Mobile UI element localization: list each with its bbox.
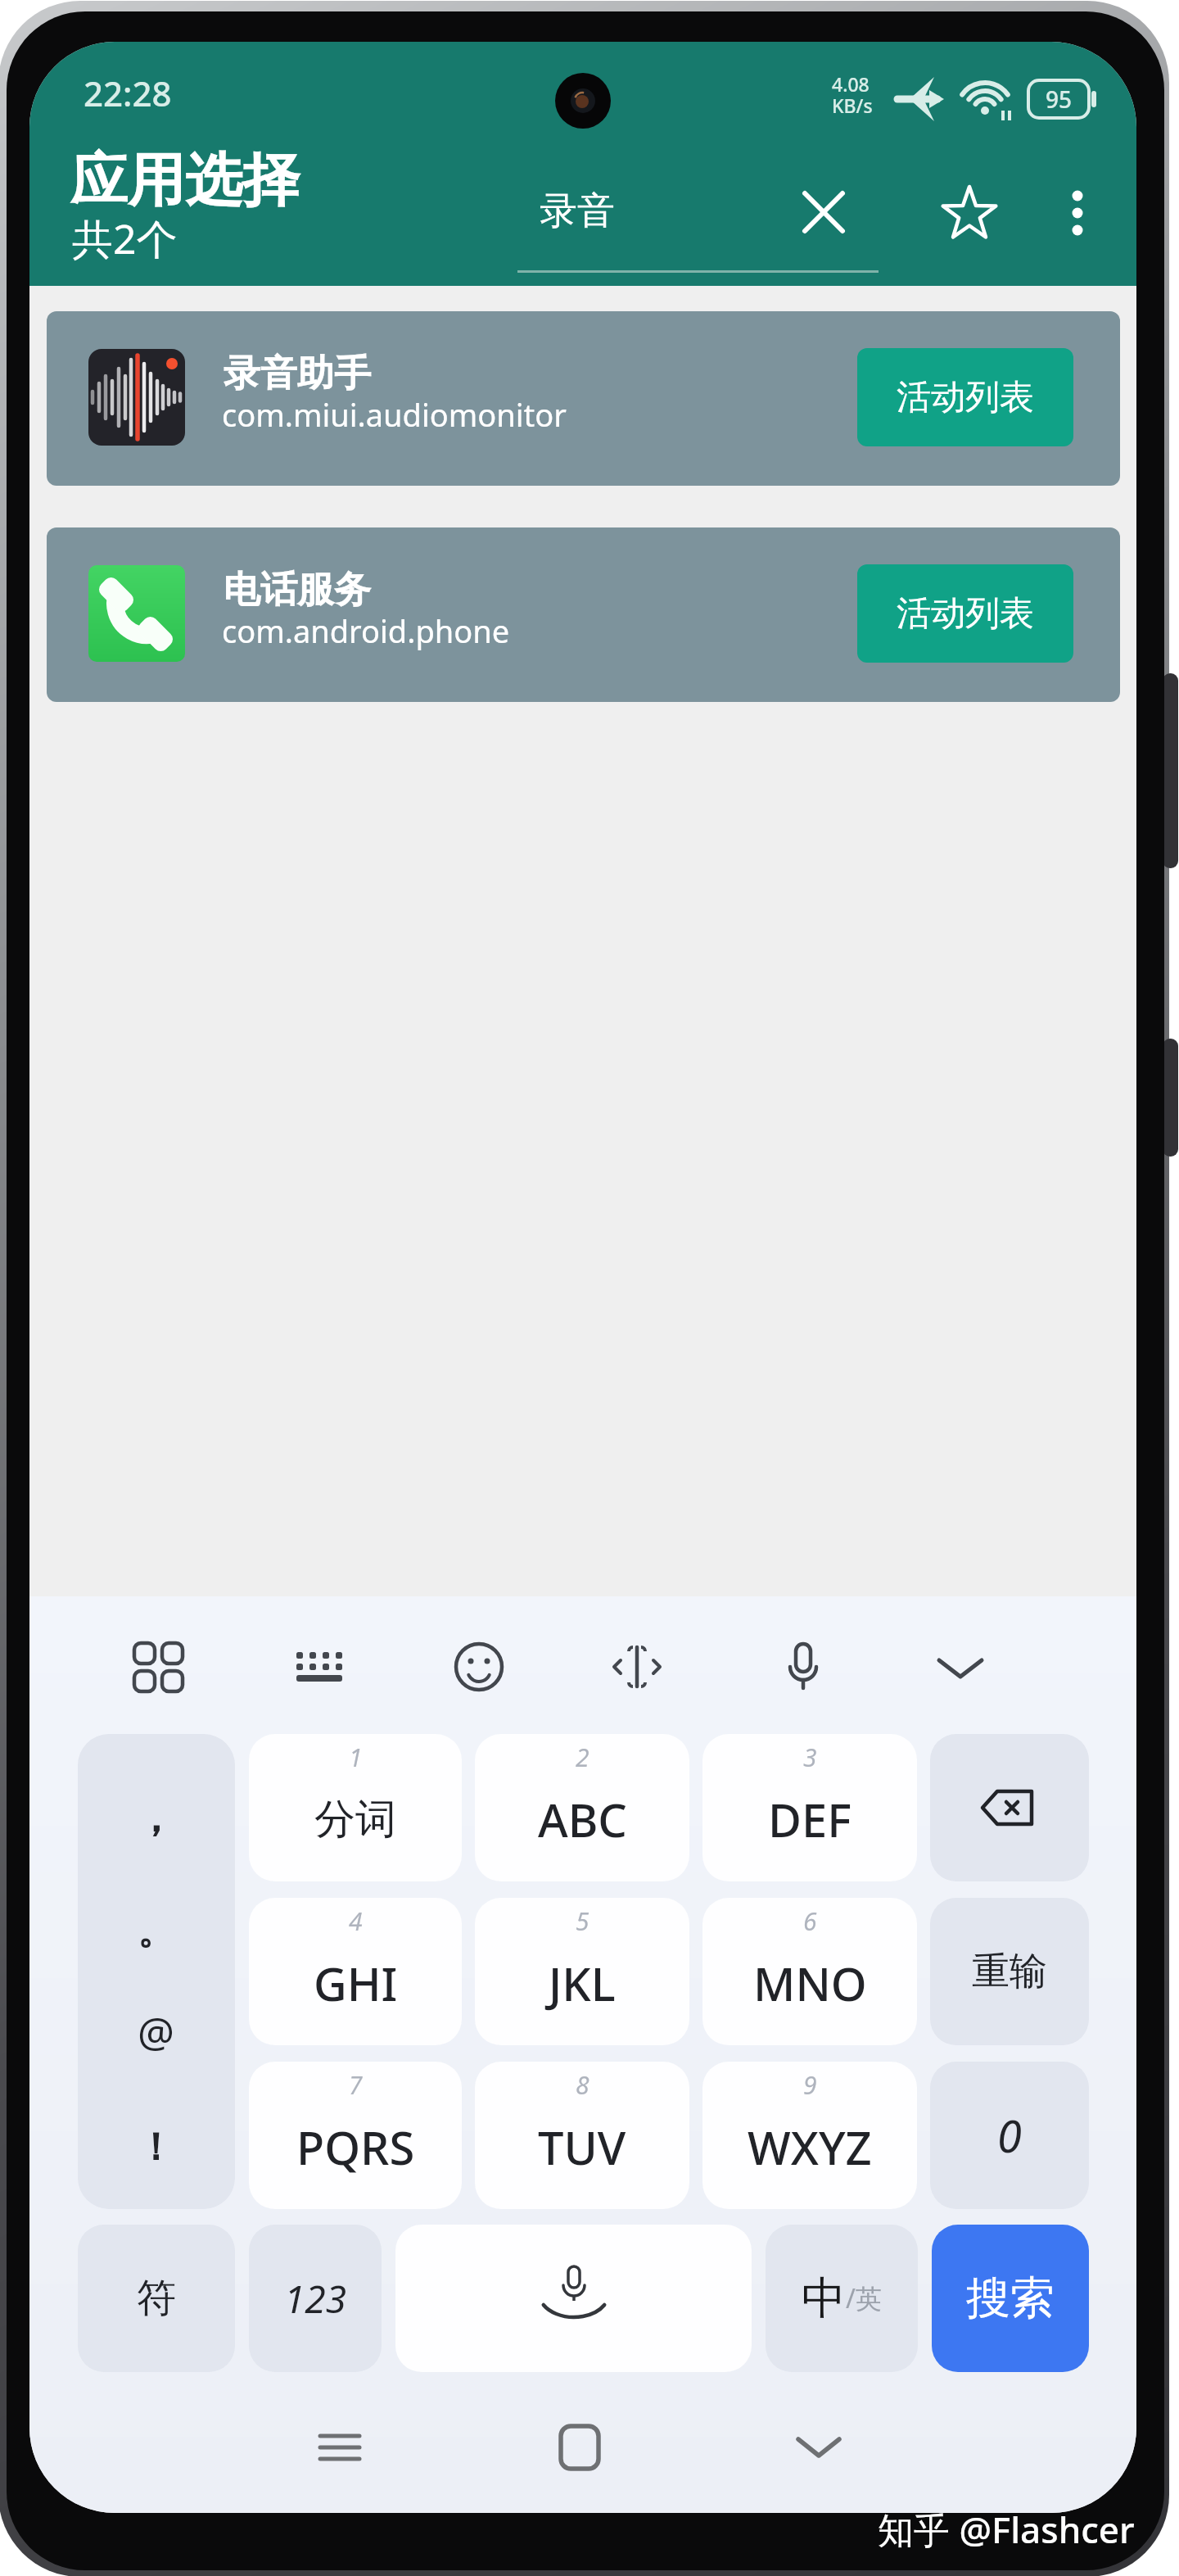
staticText: 7 bbox=[349, 2068, 363, 2102]
button[interactable] bbox=[395, 2225, 752, 2372]
button[interactable]: 重输 bbox=[930, 1898, 1089, 2045]
staticText: 中 bbox=[802, 2270, 846, 2326]
staticText: 符 bbox=[137, 2274, 176, 2323]
staticText: 共2个 bbox=[72, 211, 178, 266]
staticText: @ bbox=[138, 2003, 174, 2053]
staticText: 123 bbox=[284, 2273, 347, 2325]
button[interactable]: 1 bbox=[249, 1734, 462, 1881]
staticText: 搜索 bbox=[966, 2270, 1055, 2326]
staticText: 录音助手 bbox=[224, 351, 371, 397]
staticText: DEF bbox=[768, 1788, 851, 1850]
button[interactable]: 6 bbox=[702, 1898, 917, 2045]
button[interactable] bbox=[1063, 184, 1092, 243]
staticText: ！ bbox=[137, 2124, 174, 2171]
staticText: 6 bbox=[803, 1904, 817, 1938]
staticText: /英 bbox=[846, 2280, 882, 2316]
button[interactable]: 7 bbox=[249, 2062, 462, 2209]
staticText: GHI bbox=[314, 1952, 398, 2014]
button[interactable]: 4 bbox=[249, 1898, 462, 2045]
staticText: JKL bbox=[549, 1952, 616, 2014]
button[interactable]: 中 bbox=[766, 2225, 918, 2372]
button[interactable] bbox=[547, 2423, 612, 2472]
staticText: 应用选择 bbox=[70, 145, 300, 217]
staticText: 1 bbox=[349, 1741, 363, 1774]
button[interactable]: 录音 bbox=[29, 42, 193, 88]
button[interactable] bbox=[939, 183, 1000, 243]
staticText: 4.08 bbox=[832, 71, 870, 97]
button[interactable]: 录音助手 bbox=[47, 311, 1120, 486]
staticText: 。 bbox=[138, 1909, 174, 1954]
staticText: KB/s bbox=[832, 93, 873, 118]
staticText: 分词 bbox=[314, 1794, 396, 1845]
staticText: com.miui.audiomonitor bbox=[222, 393, 567, 436]
button[interactable] bbox=[802, 191, 845, 233]
button[interactable] bbox=[127, 1636, 189, 1698]
button[interactable]: 符 bbox=[78, 2225, 235, 2372]
button[interactable]: 0 bbox=[930, 2062, 1089, 2209]
staticText: MNO bbox=[753, 1952, 867, 2014]
staticText: 录音 bbox=[540, 188, 615, 233]
button[interactable] bbox=[606, 1636, 668, 1698]
staticText: TUV bbox=[538, 2116, 626, 2178]
staticText: 22:28 bbox=[84, 70, 172, 116]
button[interactable]: ， bbox=[78, 1734, 235, 2209]
button[interactable] bbox=[929, 1636, 992, 1698]
staticText: 4 bbox=[349, 1904, 363, 1938]
staticText: com.android.phone bbox=[222, 609, 510, 652]
staticText: WXYZ bbox=[748, 2116, 872, 2178]
staticText: 活动列表 bbox=[897, 592, 1034, 636]
button[interactable] bbox=[307, 2423, 373, 2472]
staticText: 3 bbox=[803, 1741, 817, 1774]
button[interactable] bbox=[448, 1636, 510, 1698]
staticText: 活动列表 bbox=[897, 376, 1034, 419]
staticText: 重输 bbox=[972, 1948, 1047, 1995]
staticText: 电话服务 bbox=[224, 567, 371, 613]
staticText: 95 bbox=[1046, 84, 1073, 115]
button[interactable]: 电话服务 bbox=[47, 527, 1120, 702]
staticText: ， bbox=[136, 1794, 175, 1843]
button[interactable]: 活动列表 bbox=[857, 348, 1073, 446]
button[interactable] bbox=[288, 1636, 350, 1698]
button[interactable]: 123 bbox=[249, 2225, 382, 2372]
staticText: 8 bbox=[576, 2068, 589, 2102]
button[interactable] bbox=[772, 1636, 834, 1698]
staticText: 0 bbox=[997, 2105, 1022, 2166]
button[interactable]: 9 bbox=[702, 2062, 917, 2209]
staticText: 2 bbox=[576, 1741, 589, 1774]
staticText: ABC bbox=[538, 1788, 627, 1850]
button[interactable]: 8 bbox=[475, 2062, 689, 2209]
button[interactable]: 5 bbox=[475, 1898, 689, 2045]
staticText: 9 bbox=[803, 2068, 817, 2102]
button[interactable]: 2 bbox=[475, 1734, 689, 1881]
button[interactable]: 3 bbox=[702, 1734, 917, 1881]
button[interactable] bbox=[930, 1734, 1089, 1881]
staticText: 5 bbox=[576, 1904, 589, 1938]
button[interactable]: 搜索 bbox=[932, 2225, 1089, 2372]
button[interactable] bbox=[786, 2423, 851, 2472]
staticText: PQRS bbox=[296, 2116, 415, 2178]
button[interactable]: 活动列表 bbox=[857, 564, 1073, 663]
staticText: 知乎 @Flashcer bbox=[878, 2505, 1135, 2554]
